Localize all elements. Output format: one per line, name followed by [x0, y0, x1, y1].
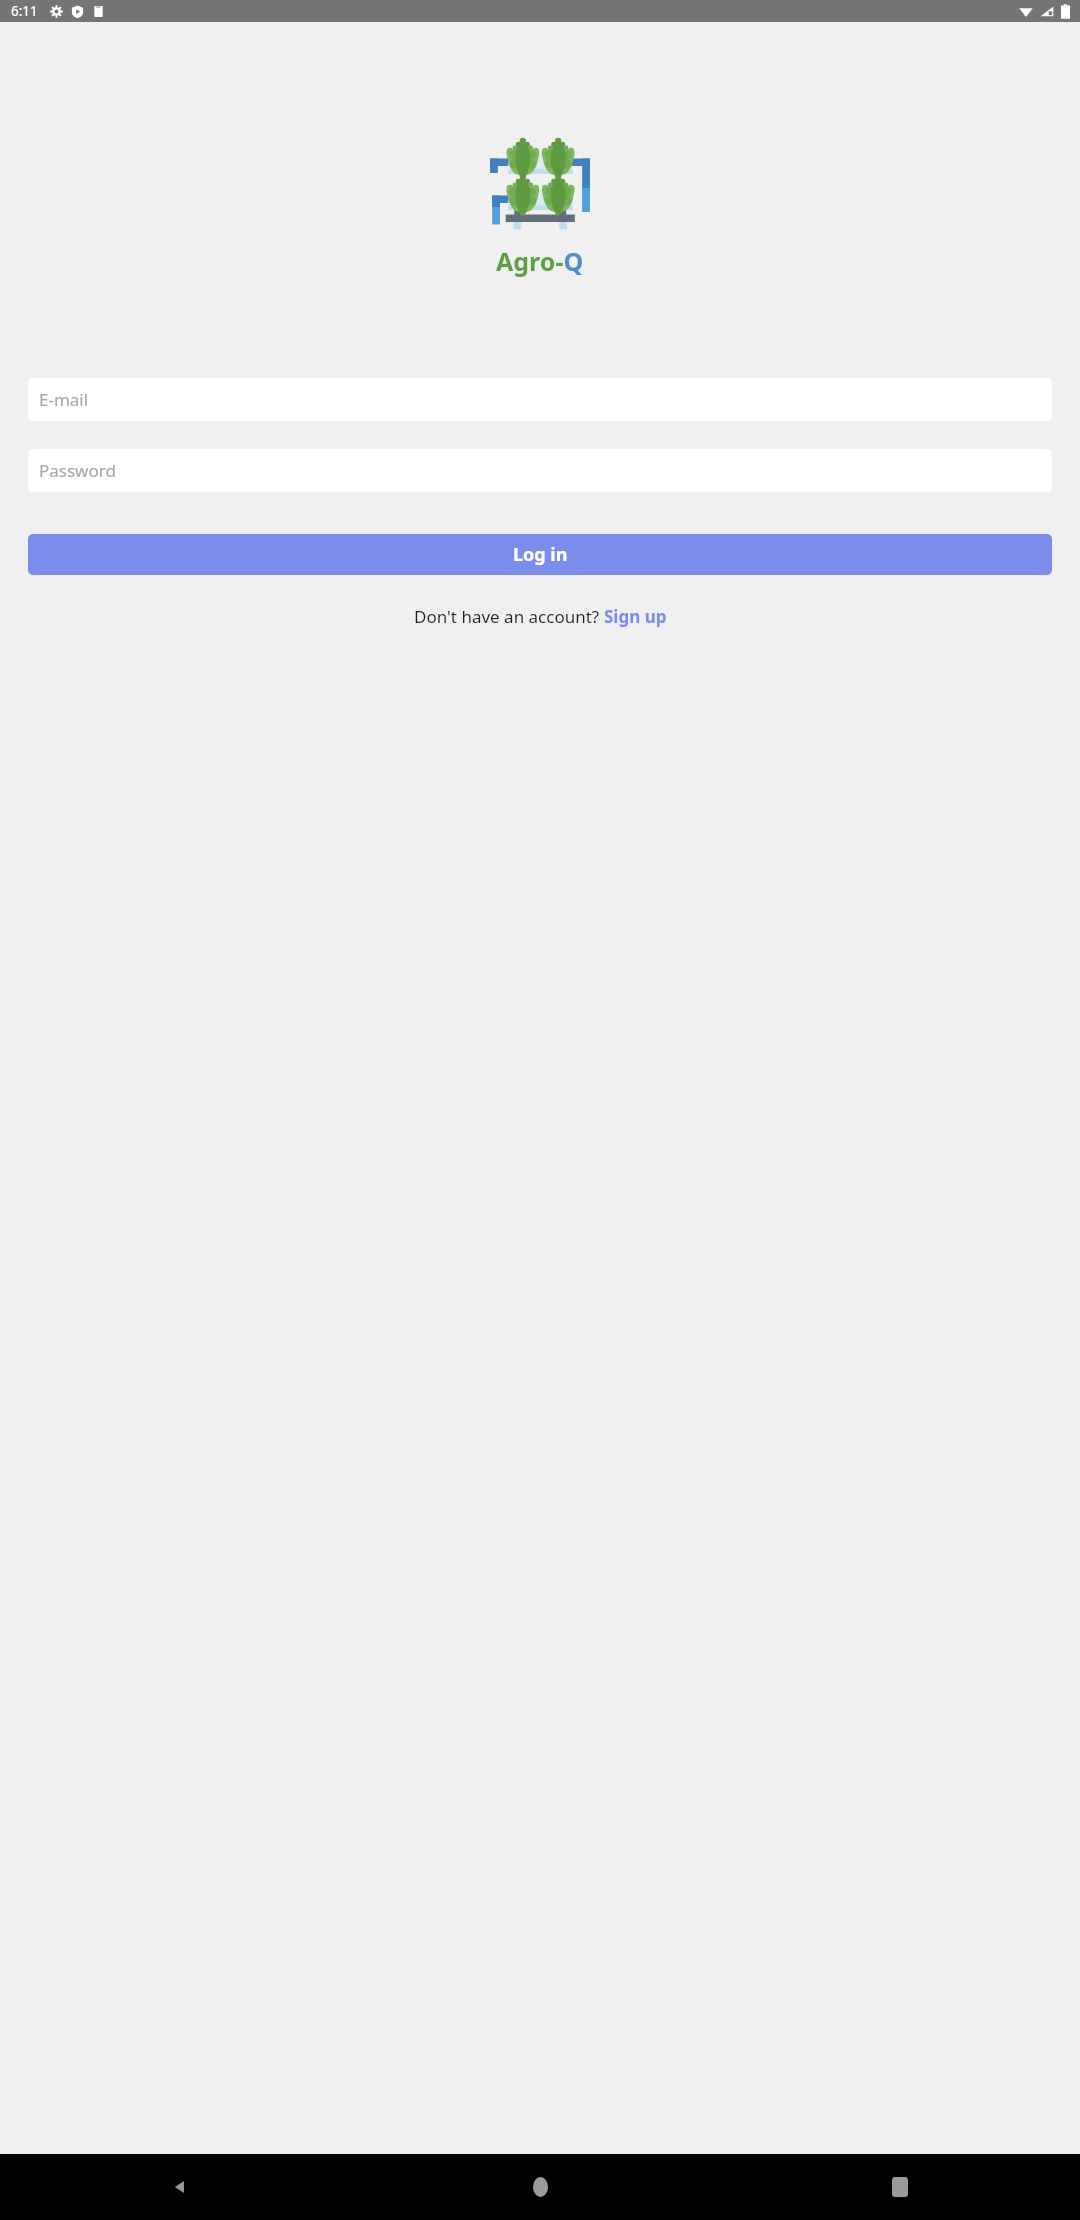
button[interactable]: Back [0, 2154, 360, 2220]
staticText: Sign up [604, 605, 667, 628]
staticText: Agro-Q [496, 244, 584, 278]
staticText: 6:11 [11, 2, 38, 20]
staticText: Password [39, 459, 116, 482]
staticText: Log in [513, 542, 568, 567]
button[interactable]: E-mail [28, 378, 1052, 421]
staticText: Don't have an account? [414, 605, 604, 628]
button[interactable]: Recent apps [720, 2154, 1080, 2220]
button[interactable]: Password [28, 449, 1052, 492]
staticText: E-mail [39, 388, 89, 411]
button[interactable]: Home [360, 2154, 720, 2220]
button[interactable]: Sign up [604, 605, 667, 628]
button[interactable]: Log in [28, 534, 1052, 575]
